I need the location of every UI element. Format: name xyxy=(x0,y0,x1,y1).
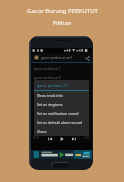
staticText: gacor perkutut 8 xyxy=(34,75,61,80)
button[interactable]: gacor perkutut 7 xyxy=(31,64,92,73)
button[interactable]: Play xyxy=(59,136,64,141)
staticText: gacor perkutut 12 xyxy=(37,83,69,88)
button[interactable]: gacor perkutut 12 xyxy=(31,109,92,118)
staticText: Show track info xyxy=(37,93,63,98)
staticText: Set as notification sound xyxy=(37,111,79,116)
staticText: gacor perkutut 13 xyxy=(34,120,63,125)
button[interactable]: gacor perkutut 8 xyxy=(31,73,92,82)
button[interactable]: gacor perkutut 9 xyxy=(31,82,92,91)
button[interactable]: Show track info xyxy=(34,91,89,100)
staticText: 0:00 xyxy=(33,136,39,140)
button[interactable]: Set as default alarm sound xyxy=(34,118,89,127)
staticText: gacor perkutut ver1 xyxy=(41,55,73,60)
button[interactable]: gacor perkutut 10 xyxy=(31,91,92,100)
button[interactable]: Share xyxy=(84,55,90,61)
button[interactable]: Set as notification sound xyxy=(34,109,89,118)
button[interactable]: Next xyxy=(71,136,76,141)
staticText: gacor perkutut 12 xyxy=(34,111,63,116)
button[interactable]: gacor perkutut 13 xyxy=(31,118,92,127)
staticText: gacor perkutut 10 xyxy=(34,93,63,98)
staticText: gacor perkutut 7 xyxy=(34,66,61,71)
staticText: gacor perkutut 11 xyxy=(34,102,63,107)
button[interactable]: Previous xyxy=(47,136,52,141)
button[interactable]: gacor perkutut 11 xyxy=(31,100,92,109)
staticText: Set as default alarm sound xyxy=(37,120,83,125)
staticText: Set as ringtone xyxy=(37,102,63,107)
staticText: 3:02 xyxy=(84,136,90,140)
staticText: Gacor Burung PERKUTUT xyxy=(27,7,98,15)
button[interactable]: Set as ringtone xyxy=(34,100,89,109)
button[interactable]: Advertisement xyxy=(31,150,92,159)
button[interactable]: Share xyxy=(34,127,89,136)
staticText: gacor perkutut 9 xyxy=(34,84,61,89)
staticText: Pilihan xyxy=(52,19,72,27)
staticText: Share xyxy=(37,129,47,134)
